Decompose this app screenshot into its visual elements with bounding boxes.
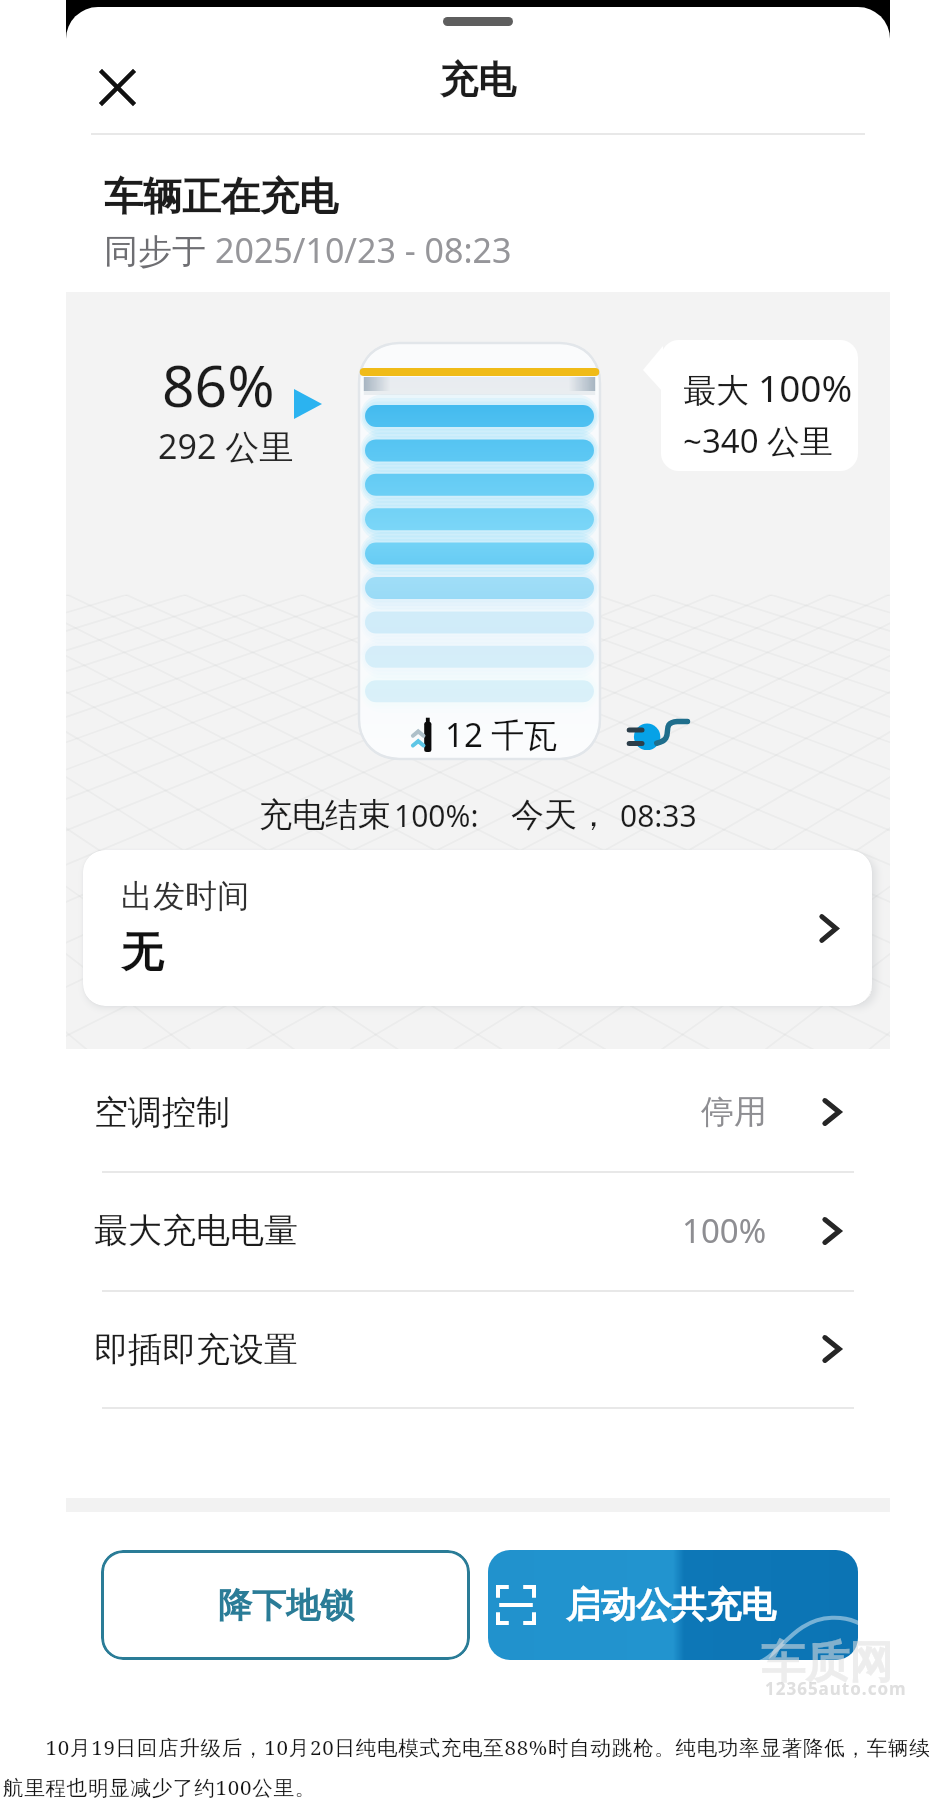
button[interactable]: Close <box>73 43 161 131</box>
button[interactable]: 即插即充设置 <box>66 1290 890 1408</box>
staticText: 100%: <box>394 795 479 836</box>
staticText: 10月19日回店升级后，10月20日纯电模式充电至88%时自动跳枪。纯电功率显著… <box>3 1733 943 1801</box>
button[interactable]: 启动公共充电 <box>488 1550 858 1660</box>
staticText: 最大 <box>683 367 758 412</box>
staticText: ~340 公里 <box>683 418 834 463</box>
staticText: 100% <box>758 362 853 412</box>
staticText: 100% <box>682 1208 767 1253</box>
staticText: 充电 <box>440 56 516 104</box>
staticText: 出发时间 <box>121 876 249 916</box>
staticText: 2025/10/23 - 08:23 <box>215 227 512 273</box>
button[interactable]: 空调控制 <box>66 1053 890 1171</box>
staticText: 车辆正在充电 <box>104 172 338 221</box>
staticText: 启动公共充电 <box>566 1583 776 1627</box>
staticText: 今天， <box>511 794 610 836</box>
staticText: 86% <box>162 346 275 424</box>
staticText: 08:33 <box>620 795 697 836</box>
staticText: 最大充电电量 <box>94 1209 298 1252</box>
button[interactable]: 最大充电电量 <box>66 1171 890 1289</box>
button[interactable]: 降下地锁 <box>101 1550 470 1660</box>
staticText: 车质网 <box>761 1635 893 1690</box>
staticText: 空调控制 <box>94 1091 230 1134</box>
staticText: 即插即充设置 <box>94 1328 298 1371</box>
staticText: 12 千瓦 <box>445 712 558 757</box>
staticText: 充电结束 <box>259 794 391 836</box>
staticText: 292 公里 <box>158 423 294 469</box>
staticText: 降下地锁 <box>218 1584 354 1627</box>
staticText: 同步于 <box>104 227 215 273</box>
staticText: 12365auto.com <box>765 1677 907 1700</box>
staticText: 无 <box>121 926 163 979</box>
button[interactable]: 出发时间 <box>83 850 872 1006</box>
staticText: 停用 <box>701 1091 767 1133</box>
